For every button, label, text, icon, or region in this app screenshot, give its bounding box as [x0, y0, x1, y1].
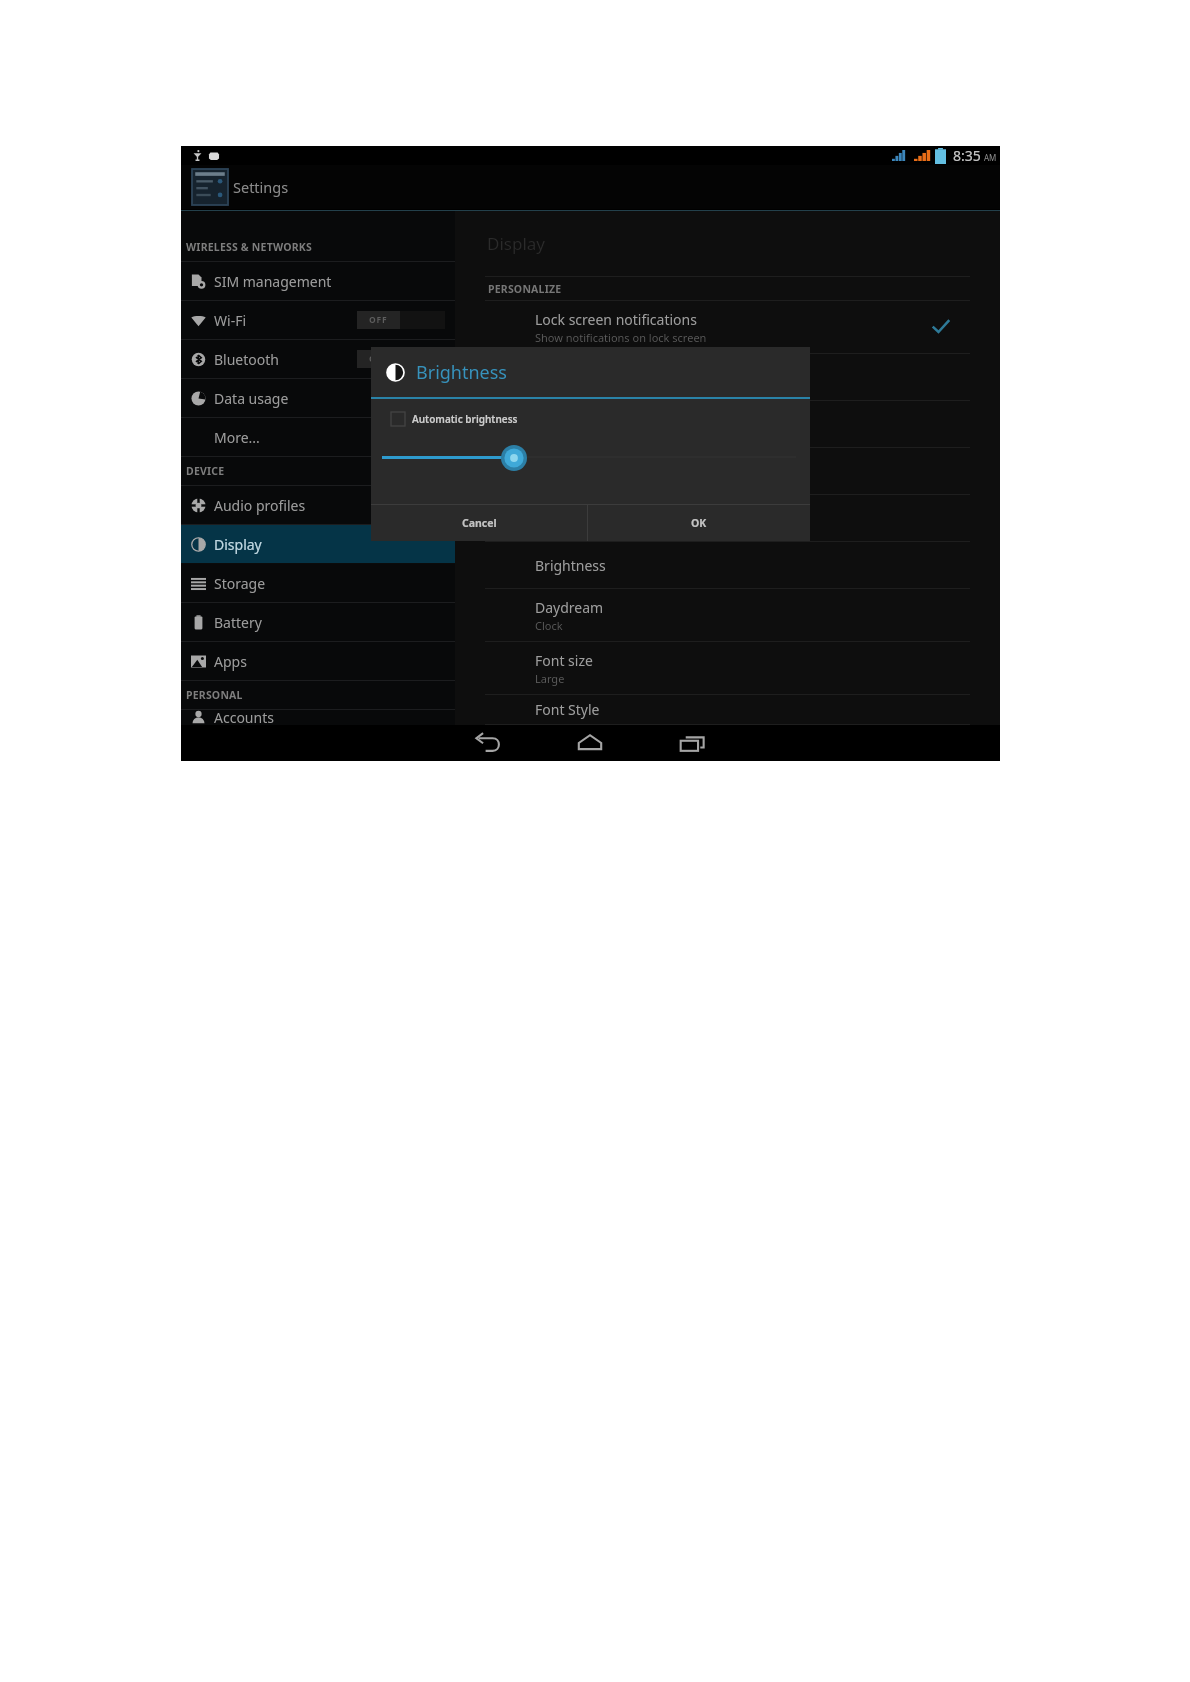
- staticText: Audio profiles: [214, 496, 306, 515]
- button[interactable]: Cancel: [371, 505, 587, 541]
- staticText: Bluetooth: [214, 350, 279, 369]
- button[interactable]: Automatic brightness: [391, 409, 518, 428]
- button[interactable]: Data usage: [181, 379, 455, 418]
- staticText: Clock: [535, 618, 563, 633]
- staticText: Apps: [214, 652, 247, 671]
- button[interactable]: Screen timeout: [455, 448, 1000, 495]
- button[interactable]: SIM management: [181, 262, 455, 301]
- staticText: Brightness: [416, 360, 507, 385]
- button[interactable]: Font Style: [455, 695, 1000, 725]
- button[interactable]: Wi-Fi: [181, 301, 455, 340]
- staticText: DEVICE: [186, 464, 225, 478]
- button[interactable]: Brightness level: [501, 445, 527, 471]
- staticText: OFF: [369, 353, 388, 365]
- staticText: Daydream: [535, 598, 604, 617]
- staticText: AM: [984, 152, 997, 163]
- staticText: OFF: [369, 314, 388, 326]
- button[interactable]: Battery: [181, 603, 455, 642]
- staticText: Accounts: [214, 708, 274, 725]
- staticText: PERSONALIZE: [488, 282, 562, 296]
- button[interactable]: Accounts: [181, 698, 455, 725]
- button[interactable]: Audio profiles: [181, 486, 455, 525]
- staticText: SIM management: [214, 272, 332, 291]
- staticText: Font Style: [535, 700, 600, 719]
- staticText: Font size: [535, 651, 593, 670]
- button[interactable]: More...: [181, 418, 455, 457]
- staticText: Display: [487, 232, 545, 255]
- button[interactable]: Font size: [455, 642, 1000, 695]
- staticText: Settings: [233, 177, 289, 197]
- button[interactable]: OK: [588, 505, 810, 541]
- staticText: Large: [535, 671, 565, 686]
- button[interactable]: Brightness: [455, 542, 1000, 589]
- staticText: More...: [214, 428, 260, 447]
- button[interactable]: Settings: [192, 169, 228, 205]
- button[interactable]: Storage: [181, 564, 455, 603]
- button[interactable]: Display: [181, 525, 455, 564]
- staticText: Show notifications on lock screen: [535, 330, 707, 345]
- staticText: Wi-Fi: [214, 311, 247, 330]
- button[interactable]: Home: [560, 725, 620, 761]
- staticText: Cancel: [462, 516, 497, 530]
- button[interactable]: Sleep: [455, 495, 1000, 542]
- button[interactable]: Recent apps: [663, 725, 723, 761]
- staticText: Data usage: [214, 389, 289, 408]
- staticText: Lock screen notifications: [535, 310, 697, 329]
- staticText: Storage: [214, 574, 266, 593]
- staticText: WIRELESS & NETWORKS: [186, 240, 312, 254]
- staticText: OK: [691, 516, 707, 530]
- button[interactable]: Daydream: [455, 589, 1000, 642]
- button[interactable]: Wallpaper: [455, 354, 1000, 401]
- staticText: Battery: [214, 613, 262, 632]
- button[interactable]: Bluetooth: [181, 340, 455, 379]
- staticText: Automatic brightness: [412, 412, 518, 426]
- staticText: PERSONAL: [186, 688, 243, 702]
- staticText: Display: [214, 535, 262, 554]
- staticText: 8:35: [953, 146, 981, 165]
- button[interactable]: Theme: [455, 401, 1000, 448]
- staticText: Brightness: [535, 556, 606, 575]
- button[interactable]: Back: [457, 725, 517, 761]
- button[interactable]: Lock screen notifications: [455, 301, 1000, 354]
- button[interactable]: Apps: [181, 642, 455, 681]
